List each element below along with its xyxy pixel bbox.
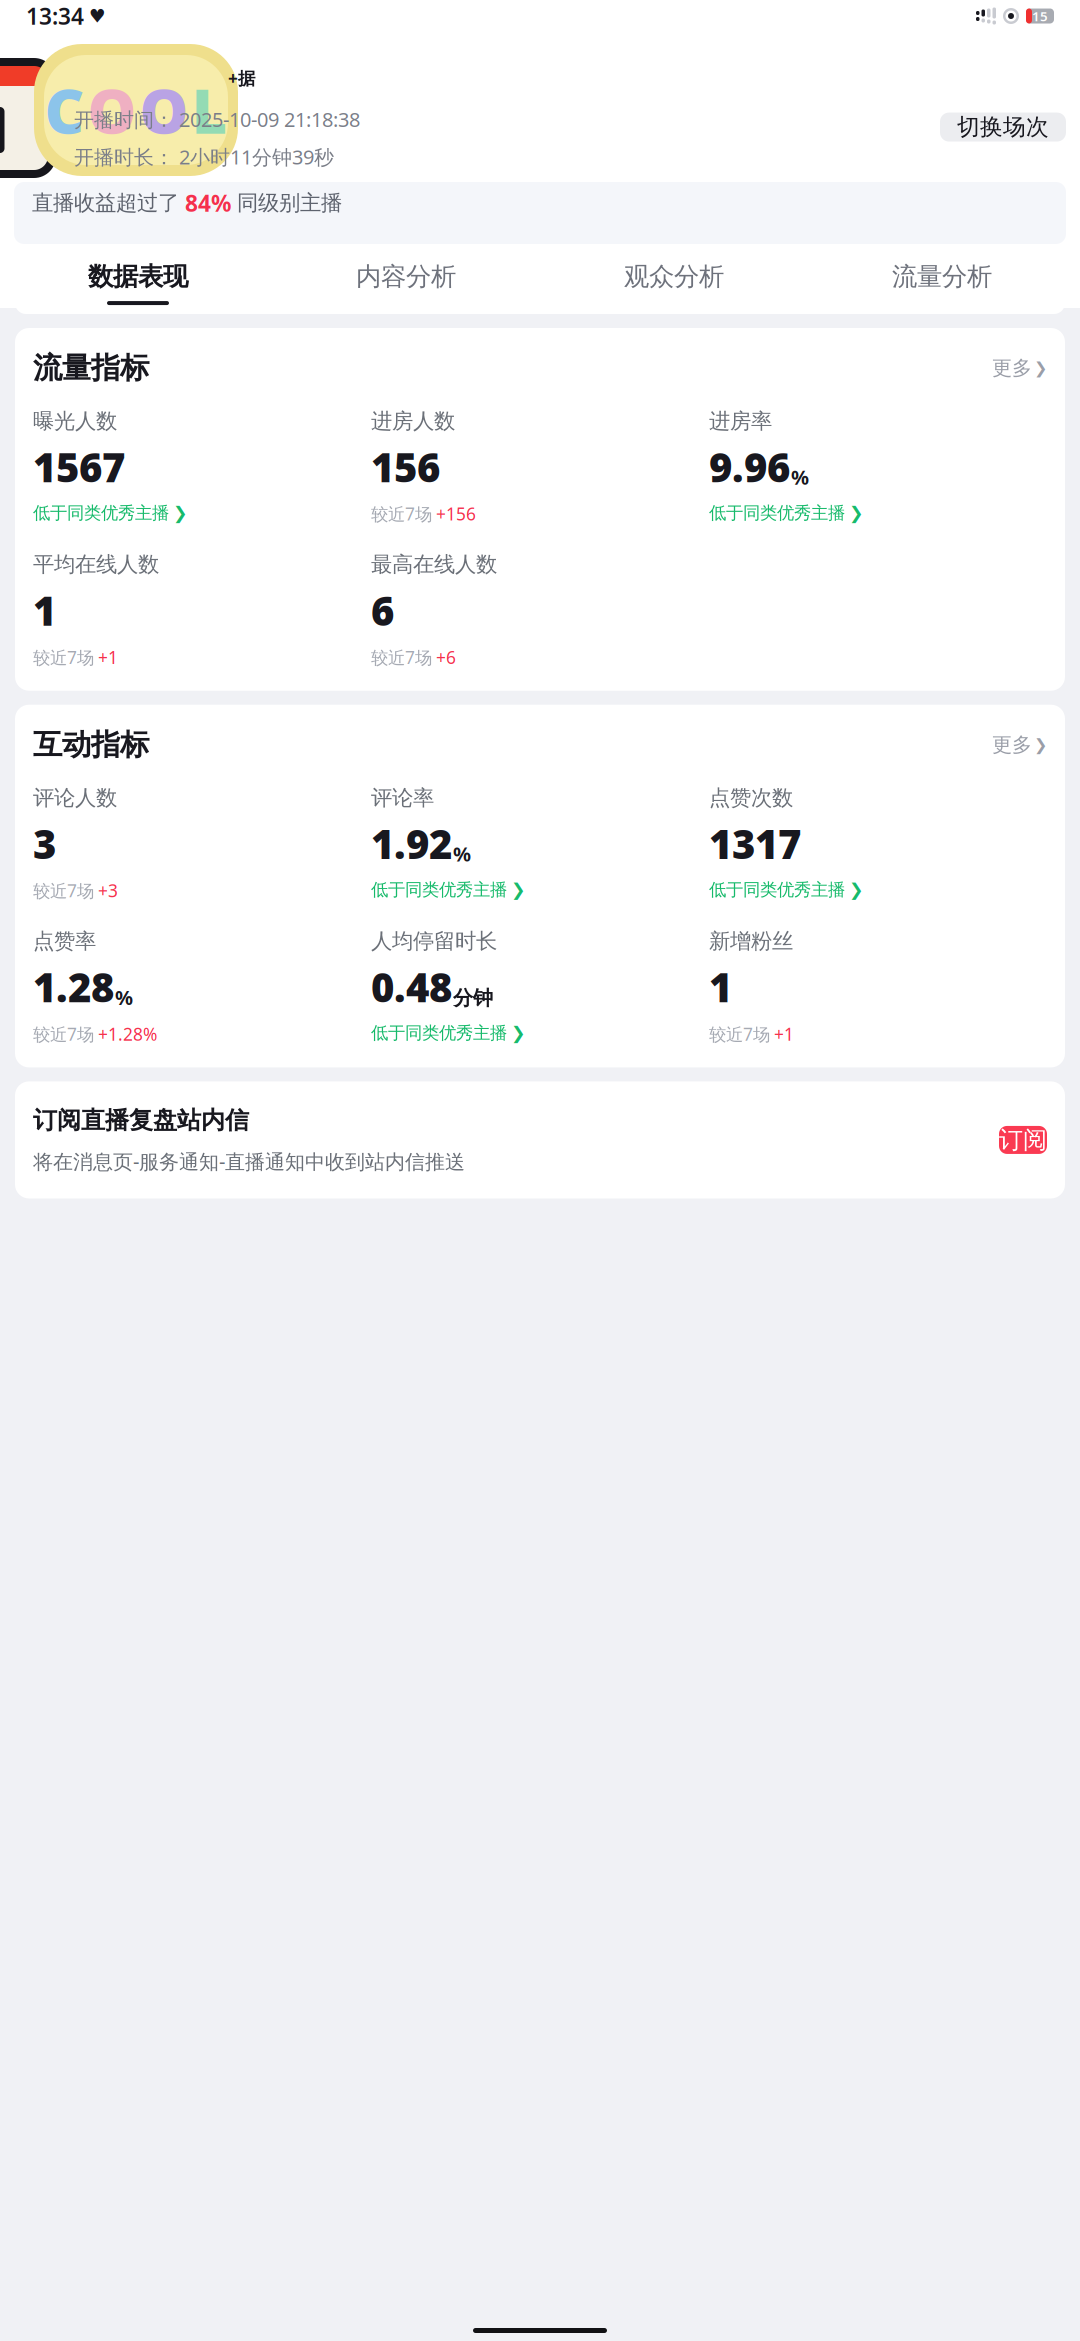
staticText: 曝光人数 bbox=[33, 408, 117, 434]
staticText: 流量分析 bbox=[892, 261, 992, 292]
staticText: 低于同类优秀主播 bbox=[371, 1022, 507, 1044]
staticText: 低于同类优秀主播 bbox=[709, 879, 845, 900]
button[interactable]: 订阅 bbox=[999, 1126, 1047, 1154]
button[interactable]: 点赞次数 bbox=[709, 785, 1047, 900]
button[interactable]: 进房率 bbox=[709, 408, 1047, 524]
staticText: 1 bbox=[709, 960, 732, 1013]
button[interactable]: 流量分析 bbox=[808, 247, 1076, 305]
staticText: O bbox=[87, 69, 136, 151]
staticText: 将在消息页-服务通知-直播通知中收到站内信推送 bbox=[33, 1148, 465, 1174]
staticText: 84% bbox=[185, 188, 231, 218]
staticText: 人均停留时长 bbox=[371, 928, 497, 954]
staticText: 同级别主播 bbox=[231, 190, 342, 216]
staticText: 6 bbox=[371, 584, 394, 637]
staticText: 较近7场 bbox=[709, 1022, 770, 1045]
staticText: ❯ bbox=[511, 880, 526, 900]
staticText: % bbox=[453, 840, 471, 867]
staticText: +3 bbox=[98, 879, 118, 902]
staticText: 较近7场 bbox=[371, 646, 432, 669]
staticText: 更多 bbox=[992, 356, 1032, 380]
button[interactable]: 更多 bbox=[982, 352, 1047, 384]
staticText: 评论人数 bbox=[33, 785, 117, 811]
staticText: 点赞次数 bbox=[709, 785, 793, 811]
button[interactable]: 更多 bbox=[982, 728, 1047, 761]
staticText: +1 bbox=[98, 646, 118, 669]
staticText: ❯ bbox=[511, 1023, 526, 1043]
staticText: 平均在线人数 bbox=[33, 551, 159, 578]
button[interactable]: 进房人数 bbox=[371, 408, 709, 525]
staticText: 互动指标 bbox=[33, 727, 149, 763]
staticText: 开播时间： 2025-10-09 21:18:38 bbox=[74, 106, 360, 133]
staticText: 低于同类优秀主播 bbox=[33, 502, 169, 524]
staticText: 流量指标 bbox=[33, 350, 149, 386]
staticText: 最高在线人数 bbox=[371, 551, 497, 578]
staticText: 直播收益超过了 bbox=[32, 190, 185, 216]
button[interactable]: 平均在线人数 bbox=[33, 551, 371, 669]
staticText: 1 bbox=[33, 584, 56, 637]
staticText: 低于同类优秀主播 bbox=[709, 502, 845, 524]
staticText: ❯ bbox=[173, 503, 188, 523]
staticText: +1 bbox=[774, 1022, 794, 1045]
button[interactable]: 评论人数 bbox=[33, 785, 371, 902]
staticText: 较近7场 bbox=[371, 502, 432, 525]
button[interactable]: 曝光人数 bbox=[33, 408, 371, 524]
staticText: ❯ bbox=[1034, 359, 1047, 377]
staticText: O bbox=[139, 69, 188, 151]
staticText: 点赞率 bbox=[33, 928, 96, 954]
button[interactable]: 内容分析 bbox=[272, 247, 540, 305]
staticText: 13:34 bbox=[26, 1, 84, 31]
staticText: 进房率 bbox=[709, 408, 772, 434]
staticText: 内容分析 bbox=[356, 261, 456, 292]
button[interactable]: 人均停留时长 bbox=[371, 928, 709, 1044]
staticText: 15 bbox=[1032, 7, 1048, 25]
staticText: 3 bbox=[33, 817, 56, 870]
staticText: 数据表现 bbox=[88, 261, 188, 292]
staticText: 开播时长： 2小时11分钟39秒 bbox=[74, 144, 334, 170]
staticText: 1317 bbox=[709, 817, 801, 870]
staticText: 低于同类优秀主播 bbox=[371, 879, 507, 900]
staticText: 0.48 bbox=[371, 960, 452, 1013]
button[interactable]: 评论率 bbox=[371, 785, 709, 900]
staticText: C bbox=[44, 69, 84, 151]
staticText: 较近7场 bbox=[33, 1022, 94, 1045]
staticText: 观众分析 bbox=[624, 261, 724, 292]
staticText: 1.92 bbox=[371, 817, 452, 870]
staticText: 评论率 bbox=[371, 785, 434, 811]
staticText: 切换场次 bbox=[957, 113, 1049, 141]
staticText: 更多 bbox=[992, 732, 1032, 757]
staticText: 分钟 bbox=[453, 986, 493, 1010]
staticText: ♥ bbox=[89, 5, 106, 27]
staticText: L bbox=[191, 69, 227, 151]
staticText: +1.28% bbox=[98, 1022, 157, 1045]
button[interactable]: 观众分析 bbox=[540, 247, 808, 305]
staticText: 9.96 bbox=[709, 440, 790, 493]
button[interactable]: 新增粉丝 bbox=[709, 928, 1047, 1045]
button[interactable]: 数据表现 bbox=[4, 247, 272, 305]
staticText: +6 bbox=[436, 646, 456, 669]
staticText: 较近7场 bbox=[33, 879, 94, 902]
button[interactable]: 最高在线人数 bbox=[371, 551, 709, 669]
staticText: 1.28 bbox=[33, 960, 114, 1013]
staticText: 进房人数 bbox=[371, 408, 455, 434]
staticText: 较近7场 bbox=[33, 646, 94, 669]
staticText: 新增粉丝 bbox=[709, 928, 793, 954]
staticText: % bbox=[791, 464, 809, 490]
staticText: 156 bbox=[371, 440, 440, 493]
staticText: +156 bbox=[436, 502, 476, 525]
staticText: % bbox=[115, 984, 133, 1010]
button[interactable]: 点赞率 bbox=[33, 928, 371, 1045]
staticText: 订阅 bbox=[999, 1125, 1047, 1155]
staticText: ❯ bbox=[1034, 736, 1047, 754]
staticText: ❯ bbox=[849, 880, 864, 900]
staticText: 1567 bbox=[33, 440, 125, 493]
button[interactable]: 切换场次 bbox=[940, 113, 1066, 142]
staticText: ❯ bbox=[849, 503, 864, 523]
staticText: 订阅直播复盘站内信 bbox=[33, 1105, 249, 1135]
staticText: +据 bbox=[228, 66, 255, 89]
